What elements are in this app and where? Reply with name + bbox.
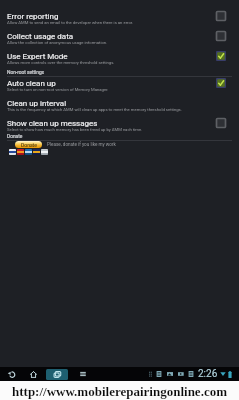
staticText: Allows more controls over the memory thr… [7, 60, 115, 65]
button[interactable]: Unchecked [216, 31, 226, 41]
button[interactable]: Checked [216, 78, 226, 88]
staticText: Show clean up messages [7, 119, 98, 128]
other: Amex [25, 149, 32, 155]
button[interactable]: Home [26, 368, 41, 380]
button[interactable]: Auto clean up [0, 75, 239, 95]
staticText: Use Expert Mode [7, 52, 68, 61]
staticText: Clean up interval [7, 99, 67, 108]
staticText: Collect usage data [7, 32, 74, 41]
button[interactable]: Menu [76, 368, 90, 380]
staticText: Error reporting [7, 12, 59, 21]
other: VISA [9, 149, 16, 155]
staticText: Allow AMM to send an email to the develo… [7, 20, 134, 25]
staticText: Non-root settings [7, 70, 45, 76]
staticText: 2:26 [198, 368, 218, 380]
staticText: Donate [7, 134, 23, 140]
staticText: Please, donate if you like my work [47, 142, 116, 147]
button[interactable]: Unchecked [216, 118, 226, 128]
staticText: Select to show how much memory has been … [7, 127, 143, 132]
staticText: Donate [21, 142, 37, 148]
staticText: This is the frequency at which AMM will … [7, 107, 182, 112]
button[interactable]: Checked [216, 51, 226, 61]
button[interactable]: Donate [15, 141, 42, 148]
button[interactable]: Use Expert Mode [0, 48, 239, 68]
button[interactable]: Unchecked [216, 11, 226, 21]
staticText: Auto clean up [7, 79, 56, 88]
staticText: Select to turn on non-root version of Me… [7, 87, 109, 92]
button[interactable]: Error reporting [0, 8, 239, 28]
other: MasterCard [17, 149, 24, 155]
button[interactable]: Collect usage data [0, 28, 239, 48]
button[interactable]: Show clean up messages [0, 115, 239, 135]
button[interactable]: Back [4, 368, 19, 380]
button[interactable]: Clean up interval [0, 95, 239, 115]
other: Discover [33, 149, 40, 155]
button[interactable]: Recent apps [46, 369, 68, 380]
staticText: Allow the collection of anonymous usage … [7, 40, 108, 45]
other: Bank [41, 149, 48, 155]
staticText: http://www.mobilerepairingonline.com [12, 384, 227, 398]
